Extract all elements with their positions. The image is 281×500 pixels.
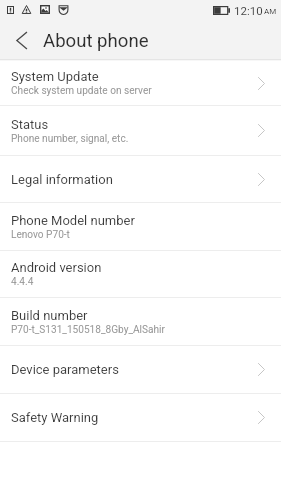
staticText: Device parameters <box>11 362 119 377</box>
button[interactable]: Legal information <box>0 156 281 202</box>
button[interactable]: Phone Model number <box>0 203 281 250</box>
staticText: Check system update on server <box>11 85 152 97</box>
staticText: 12:10 <box>234 4 263 17</box>
staticText: Status <box>11 117 49 132</box>
staticText: Legal information <box>11 172 113 187</box>
button[interactable]: Build number <box>0 298 281 345</box>
button[interactable]: Safety Warning <box>0 394 281 441</box>
staticText: Safety Warning <box>11 410 99 425</box>
staticText: About phone <box>43 30 149 52</box>
staticText: Lenovo P70-t <box>11 229 70 241</box>
staticText: Phone Model number <box>11 213 135 228</box>
staticText: AM <box>264 7 277 16</box>
button[interactable]: System Update <box>0 61 281 105</box>
button[interactable]: Navigate up <box>0 18 42 59</box>
staticText: System Update <box>11 69 99 84</box>
button[interactable]: Device parameters <box>0 346 281 393</box>
staticText: Build number <box>11 308 88 323</box>
button[interactable]: Status <box>0 106 281 155</box>
staticText: P70-t_S131_150518_8Gby_AlSahir <box>11 324 165 336</box>
staticText: 4.4.4 <box>11 276 34 288</box>
button[interactable]: Android version <box>0 251 281 297</box>
staticText: Android version <box>11 260 102 275</box>
staticText: Phone number, signal, etc. <box>11 133 129 145</box>
